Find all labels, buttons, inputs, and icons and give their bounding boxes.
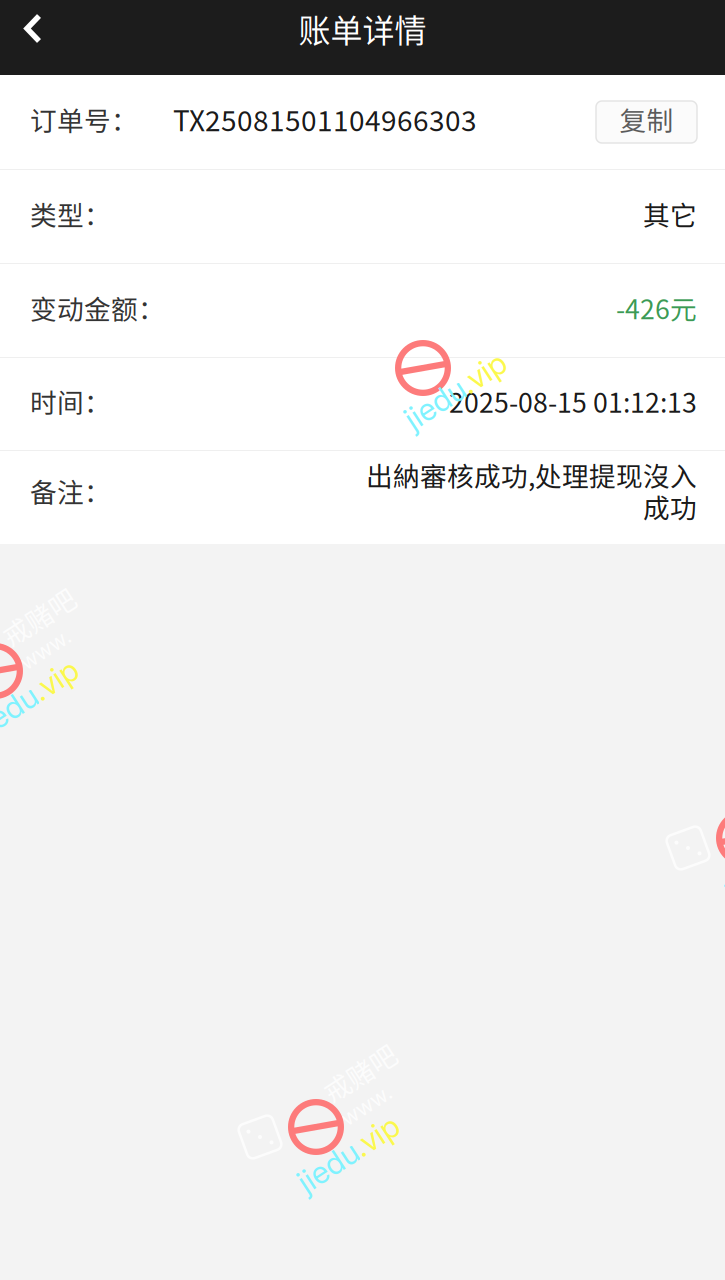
button[interactable]: 返回 xyxy=(0,0,86,75)
staticText: 备注： xyxy=(30,471,111,510)
staticText: 时间： xyxy=(30,382,111,420)
staticText: jiedu xyxy=(398,372,464,409)
staticText: jiedu xyxy=(719,846,725,883)
staticText: 变动金额： xyxy=(30,288,165,327)
staticText: 2025-08-15 01:12:13 xyxy=(449,382,697,420)
staticText: 订单号： xyxy=(30,100,138,138)
staticText: 戒赌吧 xyxy=(5,595,86,634)
staticText: 类型： xyxy=(30,194,111,233)
staticText: .vip xyxy=(36,679,85,716)
staticText: .vip xyxy=(357,1135,406,1172)
staticText: TX25081501104966303 xyxy=(173,99,477,139)
staticText: www. xyxy=(5,633,61,658)
staticText: jiedu xyxy=(291,1135,357,1172)
staticText: 其它 xyxy=(643,194,697,233)
staticText: 出納審核成功,处理提现沒入 xyxy=(366,455,697,494)
staticText: 戒赌吧 xyxy=(326,1051,407,1090)
staticText: 复制 xyxy=(619,100,673,138)
button[interactable]: 复制 xyxy=(596,101,697,143)
staticText: 成功 xyxy=(643,487,697,526)
staticText: www. xyxy=(326,1089,382,1114)
staticText: jiedu xyxy=(0,679,36,716)
staticText: 账单详情 xyxy=(298,5,426,52)
staticText: -426元 xyxy=(616,288,697,327)
staticText: .vip xyxy=(464,372,513,409)
